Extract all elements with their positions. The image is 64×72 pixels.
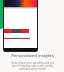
staticText: Personalized insights — [11, 53, 54, 59]
staticText: Understand your spending and get tips to… — [11, 61, 54, 70]
